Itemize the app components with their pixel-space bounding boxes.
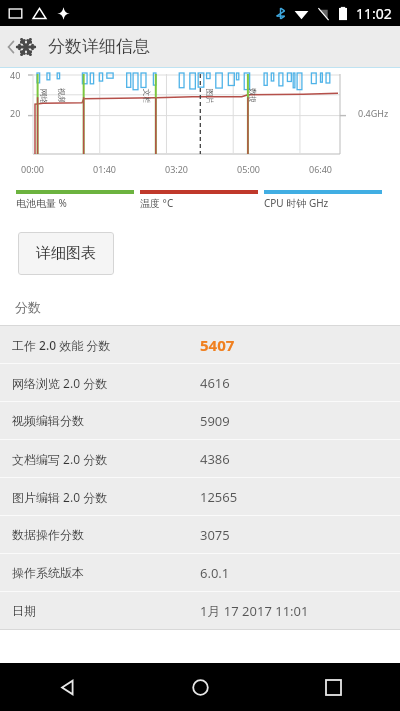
staticText: 4616	[200, 374, 230, 392]
button[interactable]: Back	[0, 663, 134, 711]
staticText: 工作 2.0 效能 分数	[12, 337, 144, 353]
staticText: CPU 时钟 GHz	[264, 196, 329, 210]
button[interactable]: 数据操作分数	[0, 516, 400, 553]
staticText: 日期	[12, 603, 144, 618]
staticText: 1月 17 2017 11:01	[200, 602, 309, 620]
staticText: 数据操作分数	[12, 527, 144, 542]
staticText: 网络浏览 2.0	[38, 88, 49, 102]
button[interactable]: 网络浏览 2.0 分数	[0, 364, 400, 401]
button[interactable]: 工作 2.0 效能 分数	[0, 326, 400, 363]
button[interactable]: Recents	[267, 663, 400, 711]
staticText: 03:20	[165, 163, 189, 175]
staticText: 数据操作	[248, 88, 258, 102]
staticText: 操作系统版本	[12, 565, 144, 580]
staticText: 视频编辑	[57, 88, 67, 102]
staticText: 网络浏览 2.0 分数	[12, 375, 144, 391]
staticText: 详细图表	[36, 244, 96, 263]
staticText: 视频编辑分数	[12, 413, 144, 428]
staticText: 3075	[200, 526, 230, 544]
button[interactable]: 图片编辑 2.0 分数	[0, 478, 400, 515]
staticText: 图片编辑 2.0	[204, 88, 215, 102]
staticText: 5407	[200, 335, 235, 355]
staticText: 0.4GHz	[358, 107, 389, 119]
staticText: 20	[10, 107, 21, 119]
button[interactable]: 操作系统版本	[0, 554, 400, 591]
staticText: 40	[10, 69, 21, 81]
staticText: 4386	[200, 450, 230, 468]
staticText: 12565	[200, 488, 238, 506]
button[interactable]: 详细图表	[18, 232, 114, 275]
button[interactable]: 文档编写 2.0 分数	[0, 440, 400, 477]
staticText: 11:02	[356, 4, 392, 23]
button[interactable]: Back	[0, 31, 40, 63]
staticText: 01:40	[93, 163, 117, 175]
staticText: 图片编辑 2.0 分数	[12, 489, 144, 505]
button[interactable]: 日期	[0, 592, 400, 629]
staticText: 文档编写 2.0 分数	[12, 451, 144, 467]
staticText: 00:00	[21, 163, 45, 175]
staticText: 6.0.1	[200, 564, 230, 582]
button[interactable]: Home	[134, 663, 267, 711]
staticText: 06:40	[309, 163, 333, 175]
staticText: 温度 °C	[140, 196, 174, 210]
staticText: 文档编写 2.0	[141, 88, 152, 102]
button[interactable]: 视频编辑分数	[0, 402, 400, 439]
staticText: 电池电量 %	[16, 196, 67, 210]
staticText: 05:00	[237, 163, 261, 175]
staticText: 分数	[15, 299, 41, 315]
staticText: 5909	[200, 412, 230, 430]
staticText: 分数详细信息	[48, 36, 150, 57]
